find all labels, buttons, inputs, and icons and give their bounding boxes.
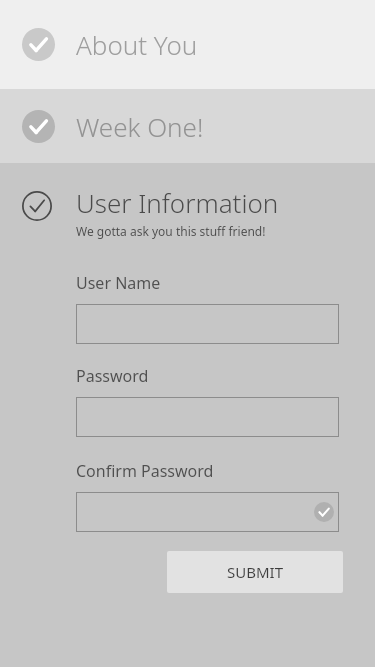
button[interactable]: User Information [0, 185, 375, 239]
button[interactable]: Week One! [0, 89, 375, 163]
staticText: SUBMIT [227, 562, 283, 582]
staticText: User Information [76, 185, 279, 220]
button[interactable]: Password confirmed [76, 492, 339, 532]
button[interactable] [76, 397, 339, 437]
staticText: Confirm Password [76, 460, 214, 482]
staticText: Week One! [76, 109, 204, 144]
staticText: Password [76, 365, 149, 387]
button[interactable]: SUBMIT [167, 551, 343, 593]
other: Password confirmed [314, 502, 334, 522]
button[interactable]: About You [0, 0, 375, 89]
staticText: User Name [76, 272, 161, 294]
staticText: About You [76, 27, 198, 62]
button[interactable] [76, 304, 339, 344]
staticText: We gotta ask you this stuff friend! [76, 223, 266, 239]
